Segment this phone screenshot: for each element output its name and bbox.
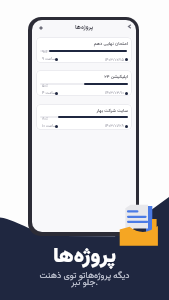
button[interactable] — [36, 37, 132, 63]
staticText: ۱۴۰۳/۰۱/۲۸ — [102, 123, 124, 130]
button[interactable] — [36, 70, 132, 96]
staticText: دیگه پروژه‌هاتو توی ذهنت — [0, 269, 169, 283]
staticText: ۵۰٪ — [42, 83, 53, 89]
staticText: ۹ ساعت — [42, 56, 60, 63]
staticText: ۱۰ ساعت — [42, 123, 60, 130]
staticText: جلو نبر. — [0, 276, 169, 290]
staticText: ۴ ساعت — [42, 90, 60, 97]
staticText: ۱۴۰۳/۰۳/۱۰ — [102, 90, 124, 97]
button[interactable] — [36, 104, 132, 130]
staticText: سایت شرکت بهار — [36, 107, 128, 114]
staticText: پروژه‌ها — [0, 240, 169, 273]
staticText: امتحان نهایی دهم — [36, 40, 128, 47]
staticText: ۱۴۰۳/۰۲/۱۵ — [102, 57, 124, 64]
staticText: اپلیکیشن ۲۴ — [36, 73, 128, 80]
staticText: ۸۰٪ — [42, 116, 53, 122]
button[interactable]: Back — [125, 22, 134, 31]
button[interactable]: Add project — [36, 23, 45, 32]
staticText: پروژه‌ها — [32, 23, 136, 33]
staticText: ۹۰٪ — [42, 49, 53, 55]
